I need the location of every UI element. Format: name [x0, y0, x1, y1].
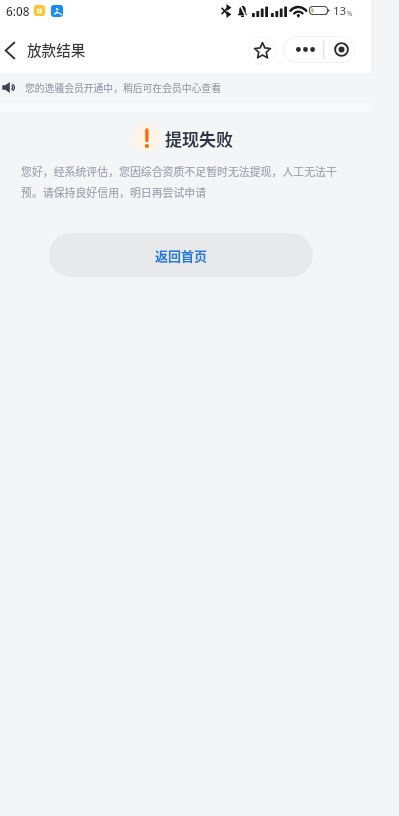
staticText: 您的逸骚会员开通中，稍后可在会员中心查看 — [25, 81, 221, 95]
staticText: 13 — [333, 3, 347, 19]
staticText: 提现失败 — [165, 126, 233, 151]
button[interactable]: 更多 — [283, 36, 324, 63]
staticText: 返回首页 — [155, 246, 208, 265]
button[interactable]: 关闭 — [324, 36, 355, 63]
staticText: 6:08 — [6, 3, 30, 19]
staticText: 放款结果 — [27, 39, 86, 60]
button[interactable]: 收藏 — [248, 36, 277, 65]
button[interactable]: 返回 — [0, 28, 26, 72]
button[interactable]: 返回首页 — [49, 233, 313, 277]
staticText: 您好，经系统评估，您因综合资质不足暂时无法提现，人工无法干预。请保持良好信用，明… — [21, 163, 341, 200]
staticText: % — [347, 9, 353, 18]
